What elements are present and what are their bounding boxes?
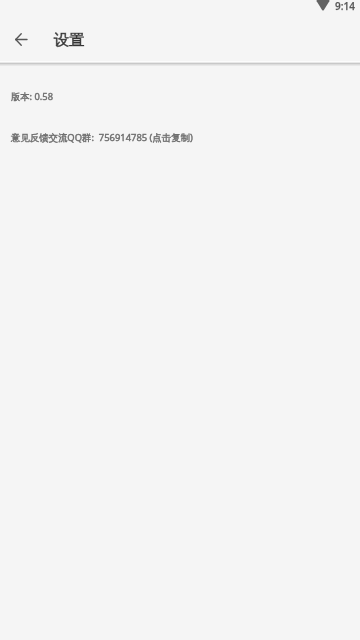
staticText: 版本: 0.58 — [11, 90, 53, 103]
staticText: 设置 — [54, 30, 85, 49]
button[interactable]: 意见反馈交流QQ群: 756914785 (点击复制) — [0, 131, 360, 144]
staticText: 设置 — [54, 30, 85, 49]
staticText: 意见反馈交流QQ群: 756914785 (点击复制) — [11, 131, 193, 144]
staticText: 9:14 — [335, 0, 355, 13]
button[interactable]: Back — [0, 16, 42, 61]
staticText: 版本: 0.58 — [11, 90, 53, 103]
staticText: 意见反馈交流QQ群: 756914785 (点击复制) — [11, 131, 193, 144]
staticText: 9:14 — [335, 0, 355, 13]
